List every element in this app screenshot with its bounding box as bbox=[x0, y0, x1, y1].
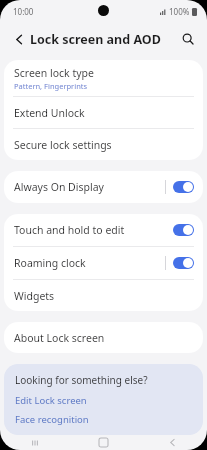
staticText: Extend Unlock bbox=[14, 106, 85, 120]
staticText: Face recognition bbox=[15, 413, 89, 426]
staticText: 10:00 bbox=[13, 6, 34, 17]
staticText: Lock screen and AOD bbox=[30, 31, 161, 48]
button[interactable]: Always On Display bbox=[4, 171, 203, 203]
staticText: Looking for something else? bbox=[15, 373, 148, 387]
staticText: Widgets bbox=[14, 289, 55, 303]
button[interactable]: Recents bbox=[0, 435, 69, 450]
button[interactable]: Home bbox=[69, 435, 138, 450]
button[interactable]: Back bbox=[138, 435, 207, 450]
button[interactable]: Touch and hold to edit toggle bbox=[173, 224, 194, 236]
button[interactable]: Extend Unlock bbox=[4, 97, 203, 128]
button[interactable]: Touch and hold to edit bbox=[4, 214, 203, 246]
button[interactable]: Roaming clock bbox=[4, 247, 203, 279]
button[interactable]: Screen lock type bbox=[4, 60, 203, 96]
staticText: Touch and hold to edit bbox=[14, 223, 173, 237]
button[interactable]: Edit Lock screen bbox=[15, 394, 87, 407]
button[interactable]: Always On Display toggle bbox=[173, 181, 194, 193]
button[interactable]: Secure lock settings bbox=[4, 129, 203, 160]
button[interactable]: Widgets bbox=[4, 280, 203, 311]
staticText: Edit Lock screen bbox=[15, 394, 87, 407]
staticText: Pattern, Fingerprints bbox=[14, 81, 88, 91]
staticText: Secure lock settings bbox=[14, 138, 112, 152]
staticText: About Lock screen bbox=[14, 331, 105, 345]
staticText: 100% bbox=[169, 6, 190, 17]
button[interactable]: Search bbox=[175, 26, 201, 52]
staticText: Roaming clock bbox=[14, 256, 165, 270]
button[interactable]: Back bbox=[6, 26, 32, 52]
staticText: Always On Display bbox=[14, 180, 165, 194]
button[interactable]: About Lock screen bbox=[4, 322, 203, 353]
button[interactable]: Roaming clock toggle bbox=[173, 257, 194, 269]
button[interactable]: Face recognition bbox=[15, 413, 89, 426]
staticText: Screen lock type bbox=[14, 66, 94, 80]
